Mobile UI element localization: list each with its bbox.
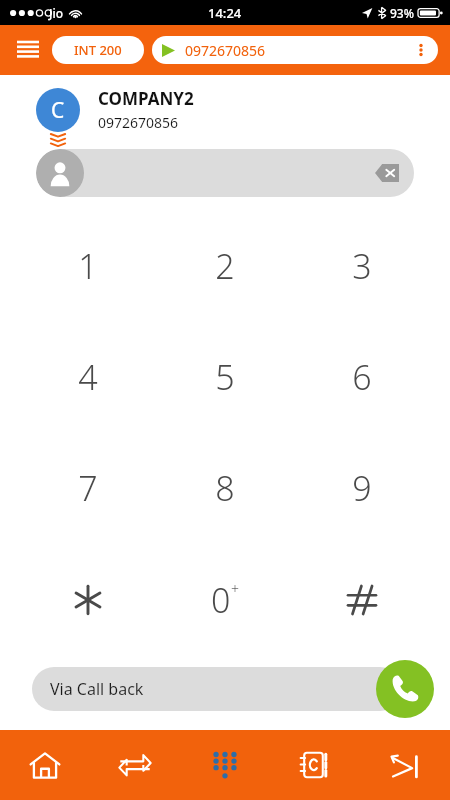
button[interactable]: Dialpad [180, 730, 270, 800]
button[interactable]: Contacts [270, 730, 360, 800]
staticText: COMPANY2 [98, 87, 194, 110]
staticText: Jio [49, 5, 64, 21]
staticText: 9 [352, 465, 372, 511]
staticText: 0 [211, 577, 231, 623]
staticText: C [51, 96, 65, 125]
staticText: 3 [352, 243, 372, 289]
button[interactable]: 1 [20, 210, 156, 321]
button[interactable]: 6 [293, 321, 430, 432]
button[interactable]: 4 [20, 321, 156, 432]
button[interactable]: Via Call back [32, 667, 402, 711]
staticText: + [231, 579, 239, 598]
staticText: 8 [215, 465, 235, 511]
button[interactable]: 8 [156, 432, 293, 544]
button[interactable]: 0 [156, 544, 293, 656]
button[interactable]: 3 [293, 210, 430, 321]
staticText: 14:24 [208, 4, 242, 22]
staticText: 0972670856 [98, 113, 179, 132]
staticText: 6 [352, 354, 372, 400]
staticText: INT 200 [74, 41, 122, 59]
staticText: 2 [215, 243, 235, 289]
button[interactable]: 9 [293, 432, 430, 544]
staticText: 4 [78, 354, 98, 400]
button[interactable]: Transfer [90, 730, 180, 800]
staticText: 7 [78, 465, 98, 511]
button[interactable]: Backspace [36, 149, 414, 197]
button[interactable]: Backspace [366, 152, 408, 194]
button[interactable]: INT 200 [52, 36, 144, 64]
button[interactable]: 5 [156, 321, 293, 432]
staticText: 1 [78, 243, 98, 289]
staticText: 5 [215, 354, 235, 400]
staticText: Via Call back [50, 678, 374, 700]
button[interactable] [293, 544, 430, 656]
button[interactable] [20, 544, 156, 656]
button[interactable]: Call [376, 660, 434, 718]
staticText: 93% [390, 5, 414, 21]
staticText: 0972670856 [185, 41, 414, 60]
button[interactable]: Menu [12, 34, 44, 66]
button[interactable]: Forward [360, 730, 450, 800]
button[interactable]: 2 [156, 210, 293, 321]
button[interactable]: Home [0, 730, 90, 800]
button[interactable]: 0972670856 [152, 36, 438, 64]
button[interactable]: 7 [20, 432, 156, 544]
